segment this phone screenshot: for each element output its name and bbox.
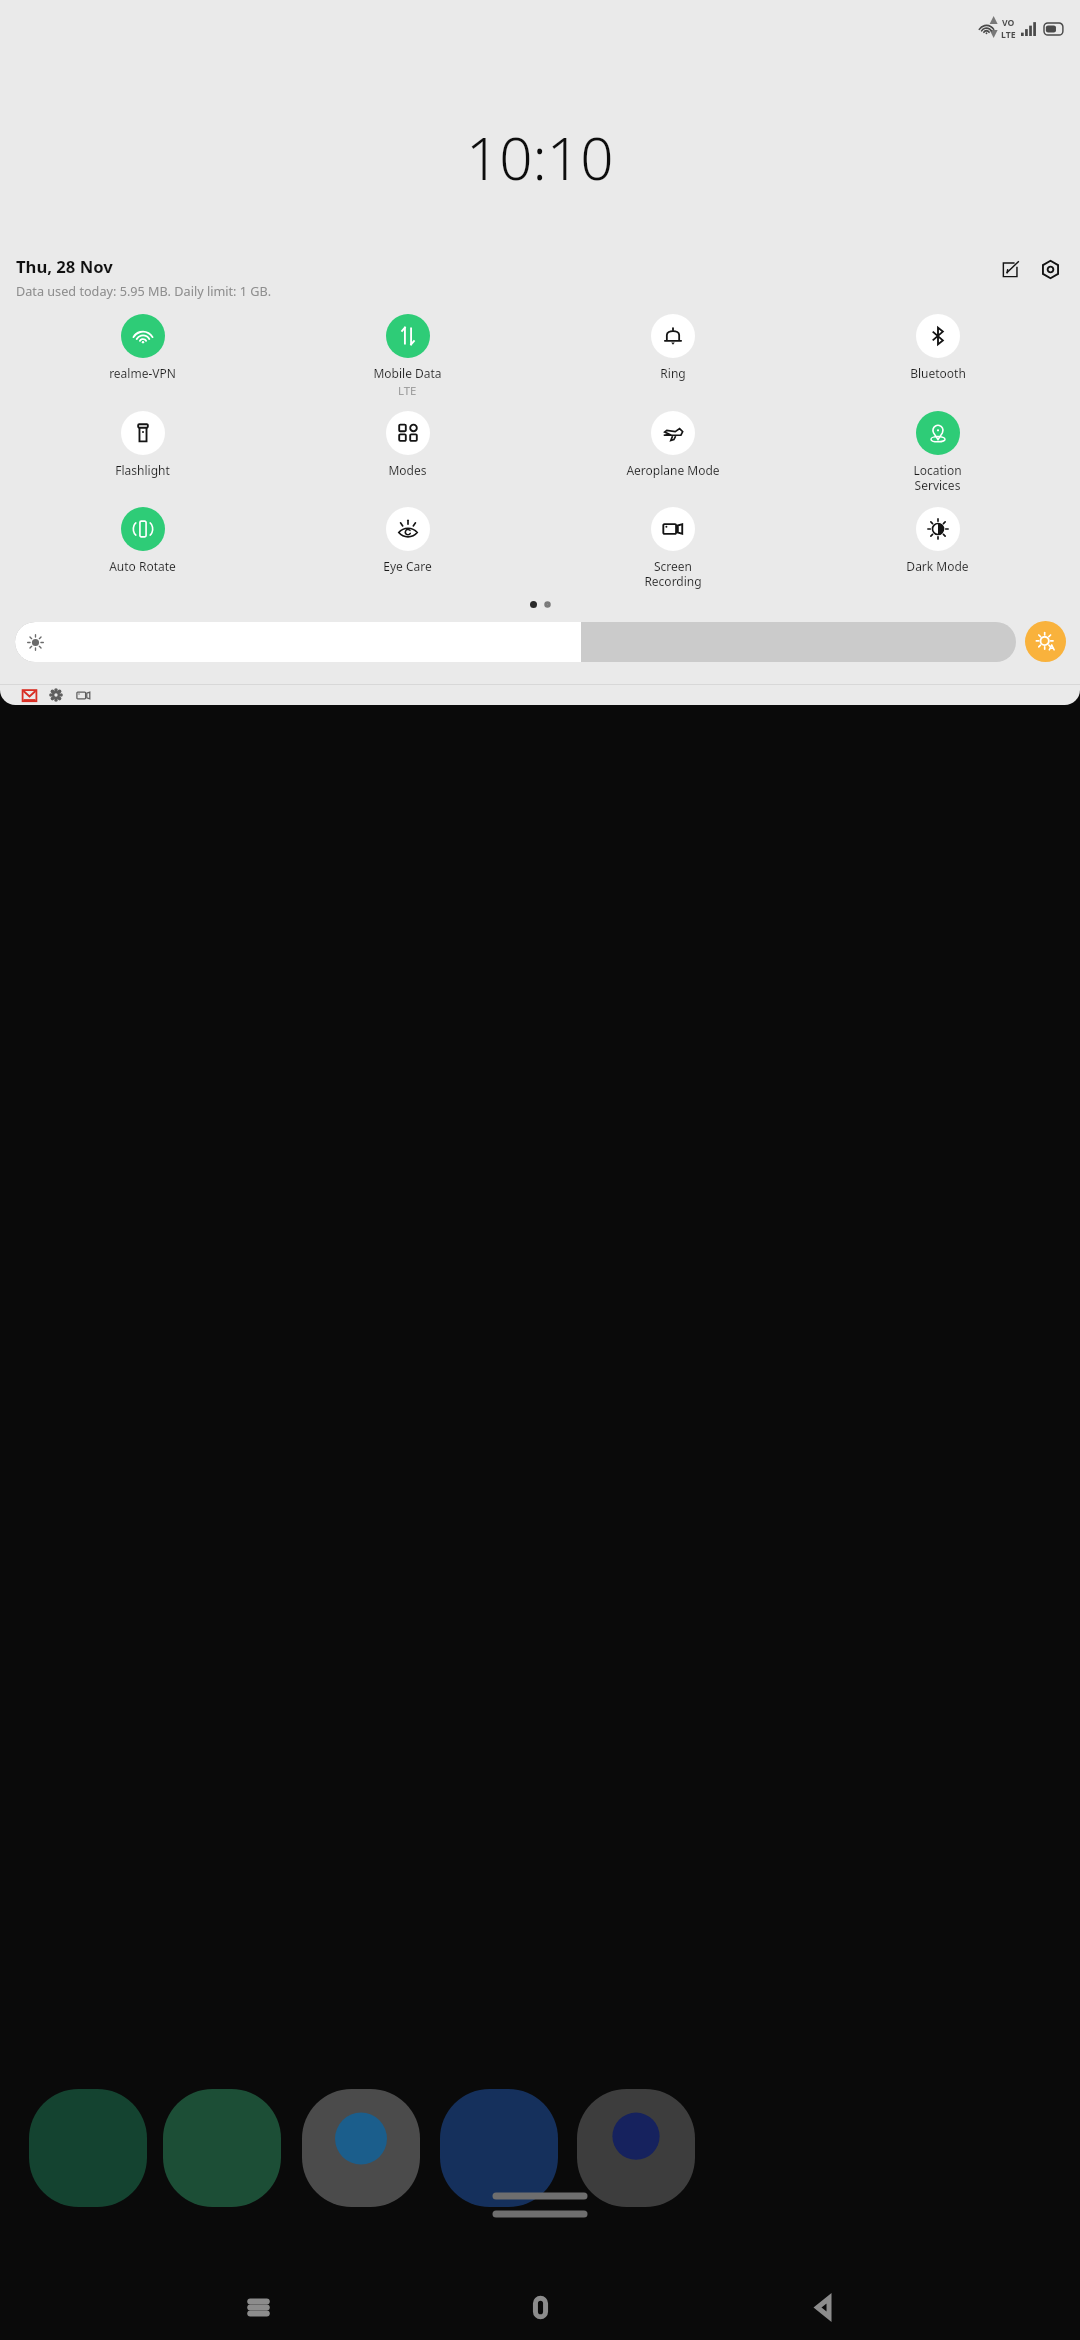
staticText: Bluetooth [910,365,966,381]
button[interactable]: Auto Rotate [10,505,275,576]
button[interactable]: Edit tiles [996,255,1025,284]
button[interactable]: Screen recording notification [73,685,93,705]
button[interactable]: Dark Mode [805,505,1070,576]
staticText: 10:10 [466,118,614,197]
button[interactable]: Gmail notification [19,685,39,705]
staticText: Thu, 28 Nov [16,255,113,278]
button[interactable]: Home [515,2282,565,2332]
staticText: Ring [660,365,686,381]
button[interactable]: Modes [275,409,540,480]
button[interactable]: Flashlight [10,409,275,480]
button[interactable]: Mobile Data [275,312,540,400]
staticText: Location Services [913,462,962,494]
button[interactable]: Location Services [805,409,1070,496]
staticText: VO [1002,17,1015,29]
button[interactable]: Auto brightness [1025,621,1066,662]
staticText: Aeroplane Mode [626,462,720,478]
button[interactable]: Back [798,2282,848,2332]
button[interactable]: realme-VPN [10,312,275,383]
button[interactable]: Settings notification [46,685,66,705]
staticText: Data used today: 5.95 MB. Daily limit: 1… [16,282,272,299]
button[interactable]: Aeroplane Mode [540,409,805,480]
staticText: Modes [388,462,427,478]
button[interactable]: Screen Recording [540,505,805,592]
staticText: LTE [398,383,417,398]
staticText: Auto Rotate [109,558,176,574]
staticText: LTE [1001,29,1016,41]
staticText: Eye Care [383,558,432,574]
staticText: Mobile Data [373,365,442,381]
staticText: Screen Recording [644,558,702,590]
button[interactable]: Eye Care [275,505,540,576]
staticText: realme-VPN [109,365,176,381]
button[interactable]: Brightness [15,622,1016,662]
button[interactable]: Bluetooth [805,312,1070,383]
staticText: Dark Mode [906,558,969,574]
button[interactable]: Settings [1036,255,1065,284]
button[interactable]: Ring [540,312,805,383]
staticText: Flashlight [115,462,170,478]
button[interactable]: Recents [233,2282,283,2332]
